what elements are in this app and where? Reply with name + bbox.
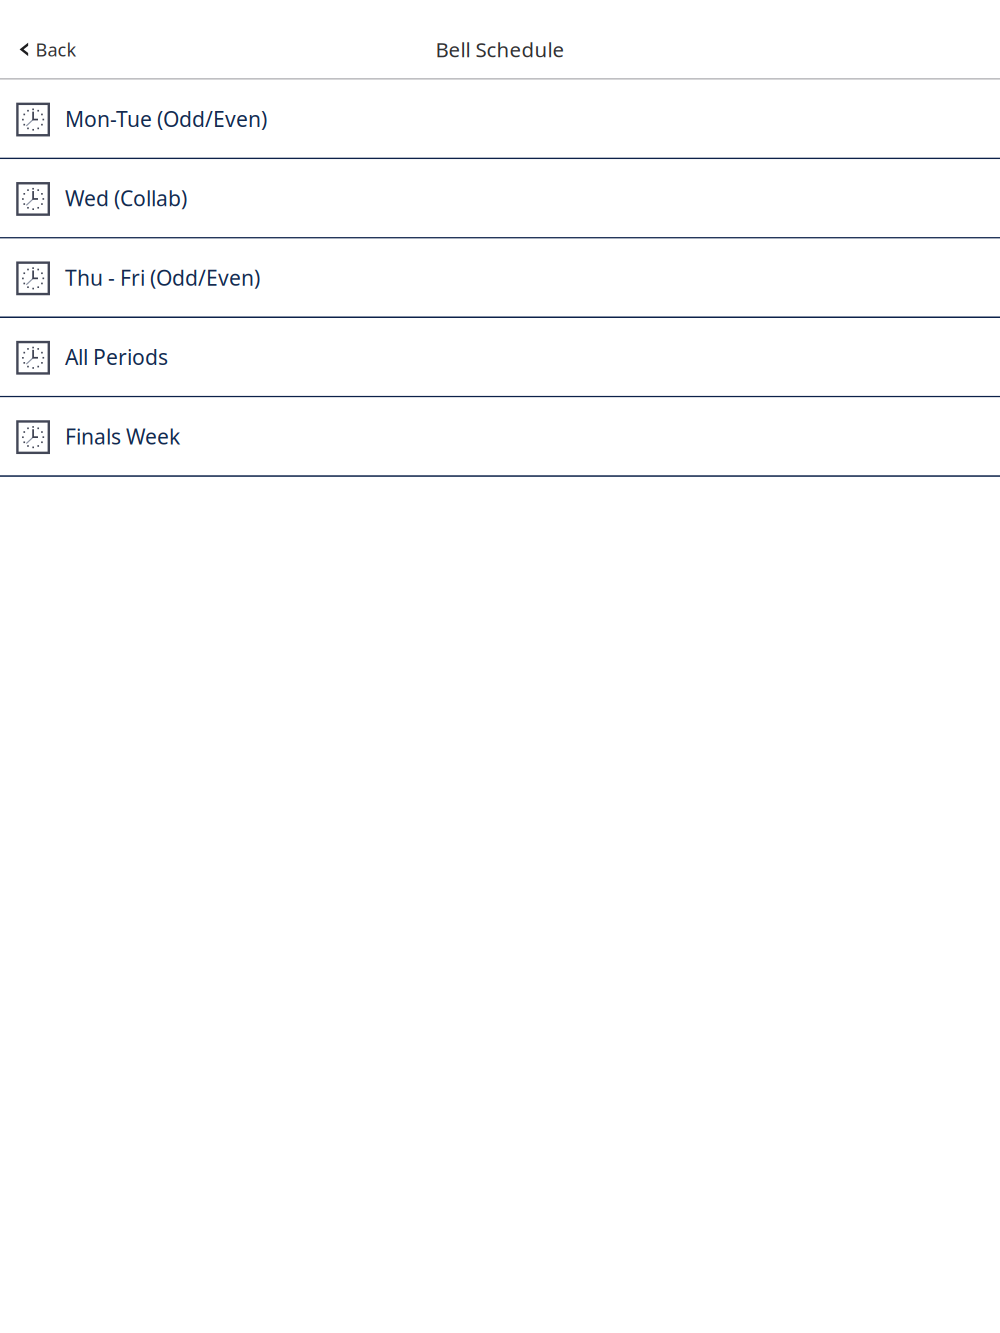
button[interactable]: Thu - Fri (Odd/Even): [0, 239, 1000, 318]
staticText: Bell Schedule: [435, 35, 564, 63]
staticText: Back: [36, 37, 77, 62]
staticText: Thu - Fri (Odd/Even): [65, 263, 260, 292]
button[interactable]: Mon-Tue (Odd/Even): [0, 80, 1000, 159]
button[interactable]: Back: [0, 24, 90, 75]
button[interactable]: Wed (Collab): [0, 159, 1000, 239]
staticText: Wed (Collab): [65, 184, 187, 212]
button[interactable]: Finals Week: [0, 397, 1000, 477]
staticText: Finals Week: [65, 422, 180, 451]
staticText: All Periods: [65, 343, 168, 371]
button[interactable]: All Periods: [0, 318, 1000, 397]
staticText: Mon-Tue (Odd/Even): [65, 104, 267, 133]
